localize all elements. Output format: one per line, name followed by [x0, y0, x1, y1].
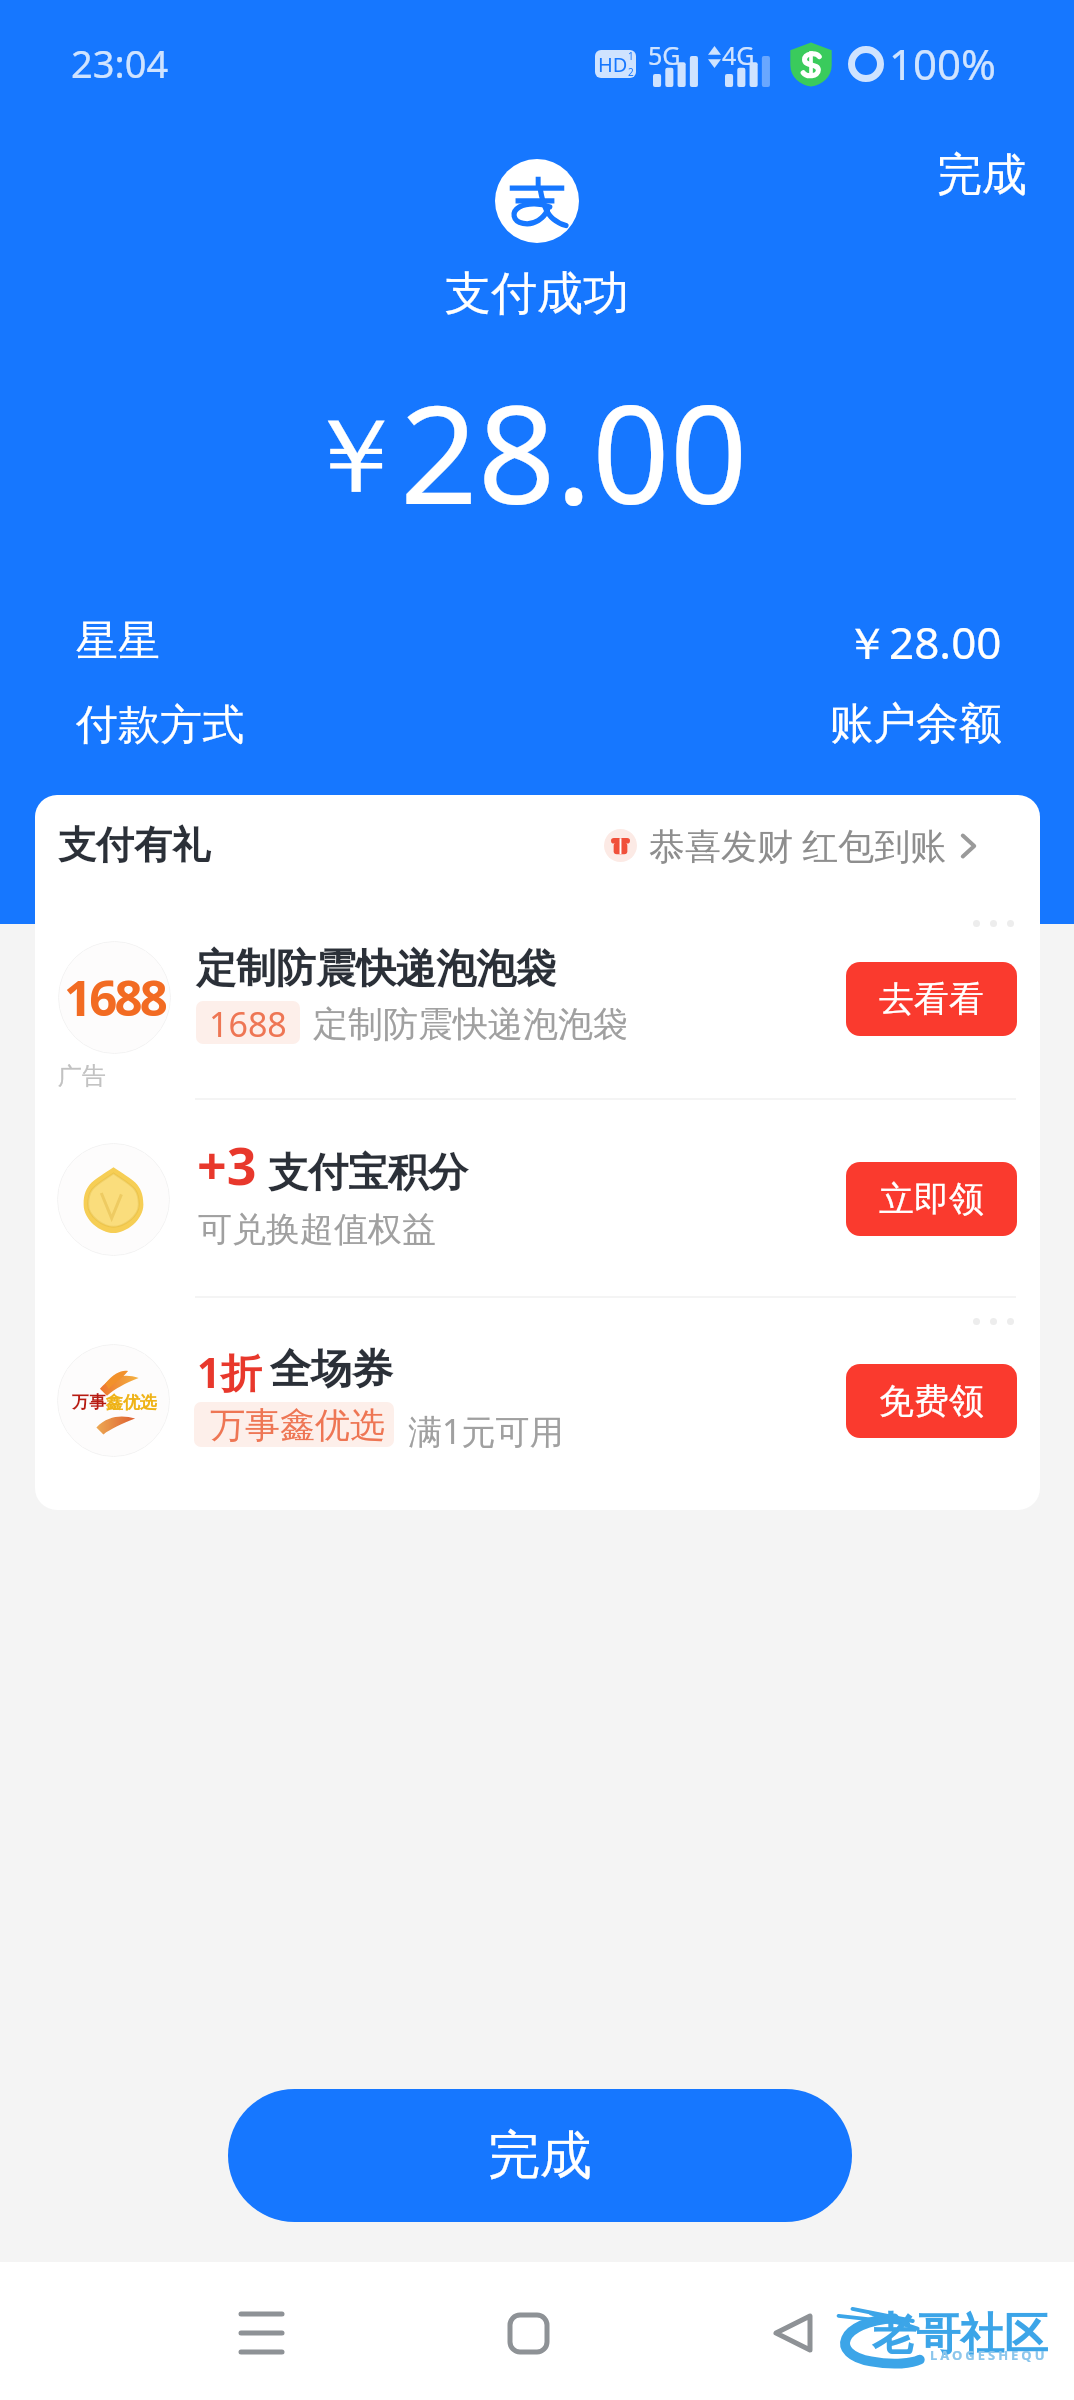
staticText: 星星	[76, 615, 160, 668]
staticText: 满1元可用	[408, 1408, 564, 1454]
staticText: LAOGESHEQU	[930, 2346, 1048, 2364]
staticText: ￥	[303, 392, 407, 523]
staticText: 1折	[197, 1344, 262, 1400]
staticText: 5G	[648, 38, 681, 72]
staticText: 定制防震快递泡泡袋	[313, 1002, 628, 1046]
staticText: 支付成功	[445, 265, 629, 323]
button[interactable]: Home	[483, 2288, 573, 2378]
staticText: 完成	[937, 147, 1027, 204]
button[interactable]	[0, 918, 1074, 1098]
staticText: 1688	[209, 1001, 287, 1044]
staticText: 鑫优选	[106, 1392, 157, 1413]
button[interactable]	[0, 1098, 1074, 1296]
staticText: 1	[628, 50, 634, 63]
button[interactable]: 恭喜发财 红包到账	[598, 815, 987, 876]
staticText: 万事	[72, 1392, 106, 1413]
staticText: 付款方式	[76, 699, 244, 752]
staticText: 立即领	[879, 1177, 984, 1221]
staticText: ￥28.00	[845, 612, 1002, 672]
staticText: 万事鑫优选	[210, 1403, 385, 1447]
button[interactable]: 立即领	[846, 1162, 1017, 1236]
staticText: +3	[197, 1129, 257, 1200]
staticText: 老哥社区	[872, 2307, 1048, 2362]
button[interactable]: 去看看	[846, 962, 1017, 1036]
staticText: 23:04	[71, 37, 169, 89]
staticText: 100%	[889, 35, 996, 92]
staticText: 去看看	[879, 977, 984, 1021]
button[interactable]: Back	[748, 2288, 838, 2378]
staticText: 免费领	[879, 1379, 984, 1423]
button[interactable]: 免费领	[846, 1364, 1017, 1438]
staticText: 广告	[58, 1061, 106, 1091]
button[interactable]: Recent apps	[216, 2288, 306, 2378]
button[interactable]: 完成	[228, 2089, 852, 2222]
staticText: 4G	[722, 38, 755, 72]
staticText: 2	[628, 65, 634, 78]
staticText: 支付宝积分	[268, 1147, 468, 1197]
staticText: 定制防震快递泡泡袋	[196, 943, 556, 993]
staticText: 可兑换超值权益	[198, 1208, 436, 1251]
staticText: 28.00	[400, 359, 748, 544]
staticText: 恭喜发财 红包到账	[649, 821, 947, 870]
staticText: 1688	[64, 964, 165, 1031]
staticText: HD	[598, 51, 628, 78]
staticText: 支付有礼	[58, 821, 210, 869]
button[interactable]: Done	[921, 133, 1043, 218]
button[interactable]	[0, 1296, 1074, 1510]
staticText: 账户余额	[830, 697, 1002, 751]
staticText: 全场券	[270, 1344, 393, 1396]
staticText: 完成	[488, 2123, 592, 2189]
